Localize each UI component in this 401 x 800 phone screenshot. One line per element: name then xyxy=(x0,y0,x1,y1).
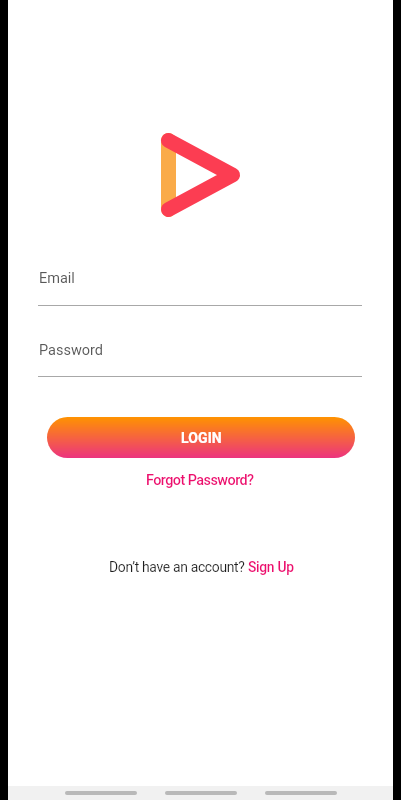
staticText: LOGIN xyxy=(181,430,222,446)
staticText: Forgot Password? xyxy=(146,472,254,489)
staticText: Sign Up xyxy=(248,559,294,575)
button[interactable]: Email xyxy=(38,268,362,308)
button[interactable]: LOGIN xyxy=(47,417,355,458)
staticText: Password xyxy=(39,342,104,359)
button[interactable]: Recents xyxy=(265,791,337,795)
button[interactable]: Forgot Password? xyxy=(140,469,260,492)
button[interactable]: Password xyxy=(38,339,362,379)
button[interactable]: Home xyxy=(165,791,237,795)
button[interactable]: Sign Up xyxy=(248,559,294,575)
staticText: Email xyxy=(39,270,75,287)
staticText: Don’t have an account? xyxy=(109,559,248,575)
other: App logo xyxy=(161,133,240,217)
button[interactable]: Back xyxy=(65,791,137,795)
